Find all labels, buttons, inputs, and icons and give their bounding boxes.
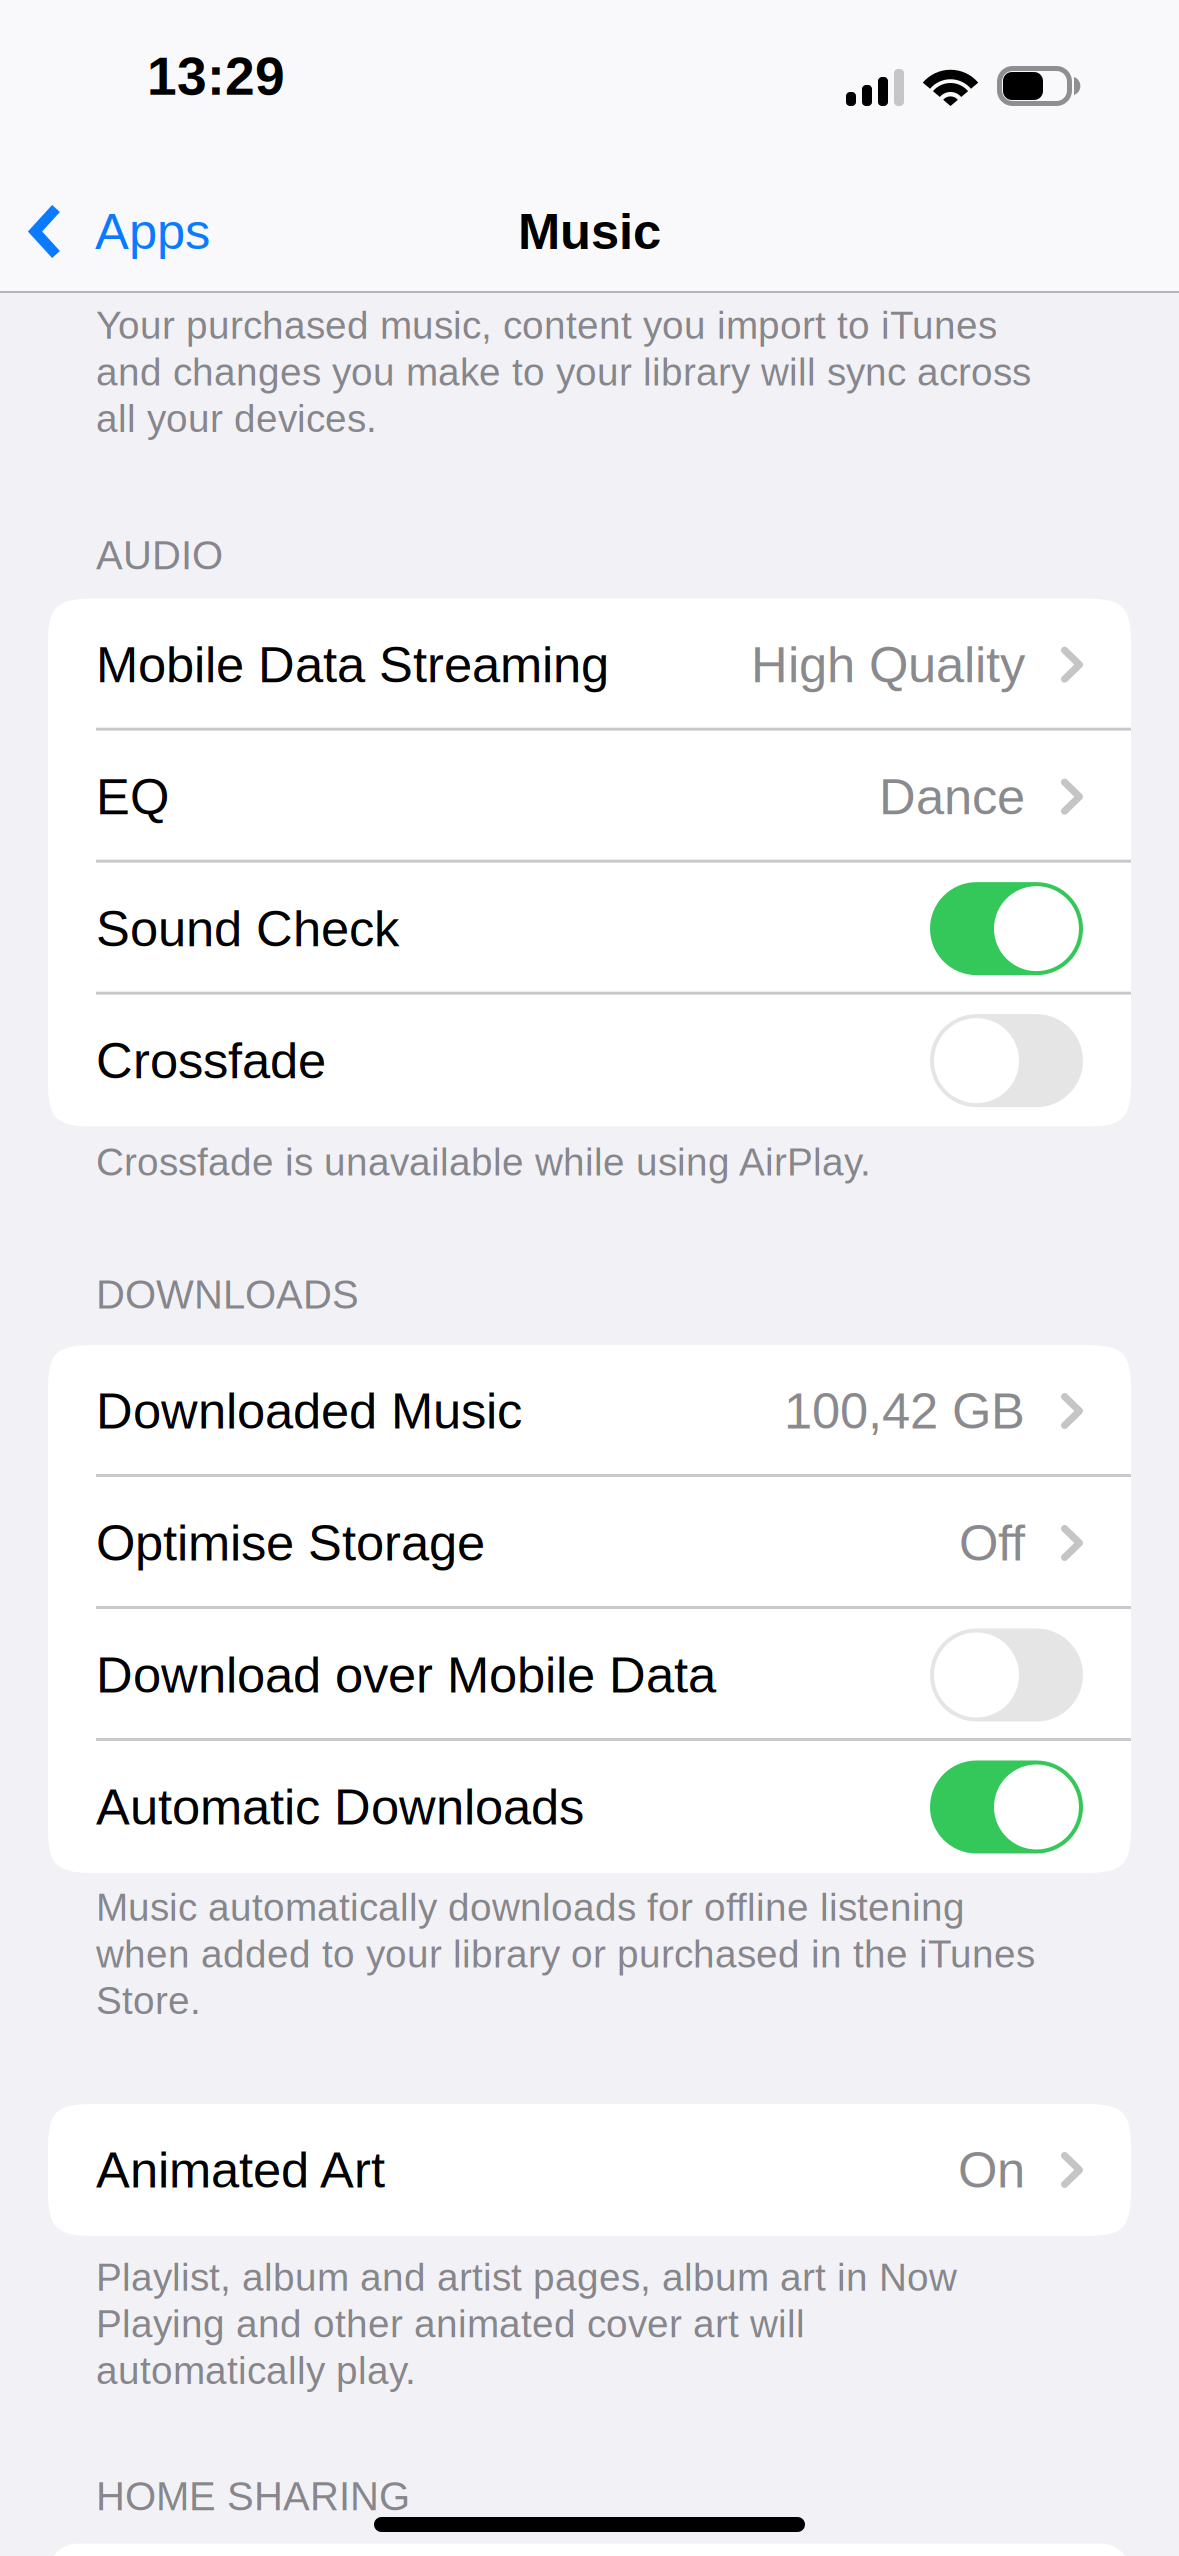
staticText: Music automatically downloads for offlin…	[96, 1884, 1035, 2024]
staticText: Downloaded Music	[96, 1383, 522, 1439]
staticText: Download over Mobile Data	[96, 1647, 716, 1703]
staticText: Automatic Downloads	[96, 1779, 584, 1835]
staticText: Animated Art	[96, 2142, 385, 2198]
button[interactable]: Crossfade	[930, 1014, 1083, 1107]
staticText: HOME SHARING	[96, 2474, 410, 2519]
staticText: DOWNLOADS	[96, 1272, 359, 1317]
button[interactable]: Download over Mobile Data	[930, 1628, 1083, 1721]
staticText: Music	[518, 203, 661, 260]
staticText: On	[958, 2142, 1025, 2198]
staticText: Dance	[879, 768, 1025, 825]
button[interactable]: Animated Art	[48, 2104, 1131, 2236]
staticText: Crossfade is unavailable while using Air…	[96, 1139, 871, 1185]
staticText: High Quality	[751, 636, 1025, 693]
staticText: Playlist, album and artist pages, album …	[96, 2254, 957, 2394]
staticText: Optimise Storage	[96, 1515, 485, 1571]
button[interactable]: Automatic Downloads	[930, 1760, 1083, 1853]
staticText: Sound Check	[96, 900, 399, 957]
staticText: EQ	[96, 768, 169, 825]
button[interactable]: Downloaded Music	[48, 1345, 1131, 1477]
button[interactable]: Apps	[0, 170, 234, 293]
staticText: Your purchased music, content you import…	[96, 302, 1031, 442]
button[interactable]: Sound Check	[930, 882, 1083, 975]
staticText: AUDIO	[96, 533, 223, 578]
staticText: Apps	[95, 203, 210, 260]
button[interactable]: EQ	[48, 731, 1131, 863]
staticText: 100,42 GB	[784, 1383, 1025, 1439]
button[interactable]: Mobile Data Streaming	[48, 599, 1131, 731]
staticText: Off	[959, 1515, 1025, 1571]
staticText: Crossfade	[96, 1032, 326, 1089]
staticText: 13:29	[147, 46, 285, 106]
button[interactable]: Optimise Storage	[48, 1477, 1131, 1609]
staticText: Mobile Data Streaming	[96, 636, 609, 693]
